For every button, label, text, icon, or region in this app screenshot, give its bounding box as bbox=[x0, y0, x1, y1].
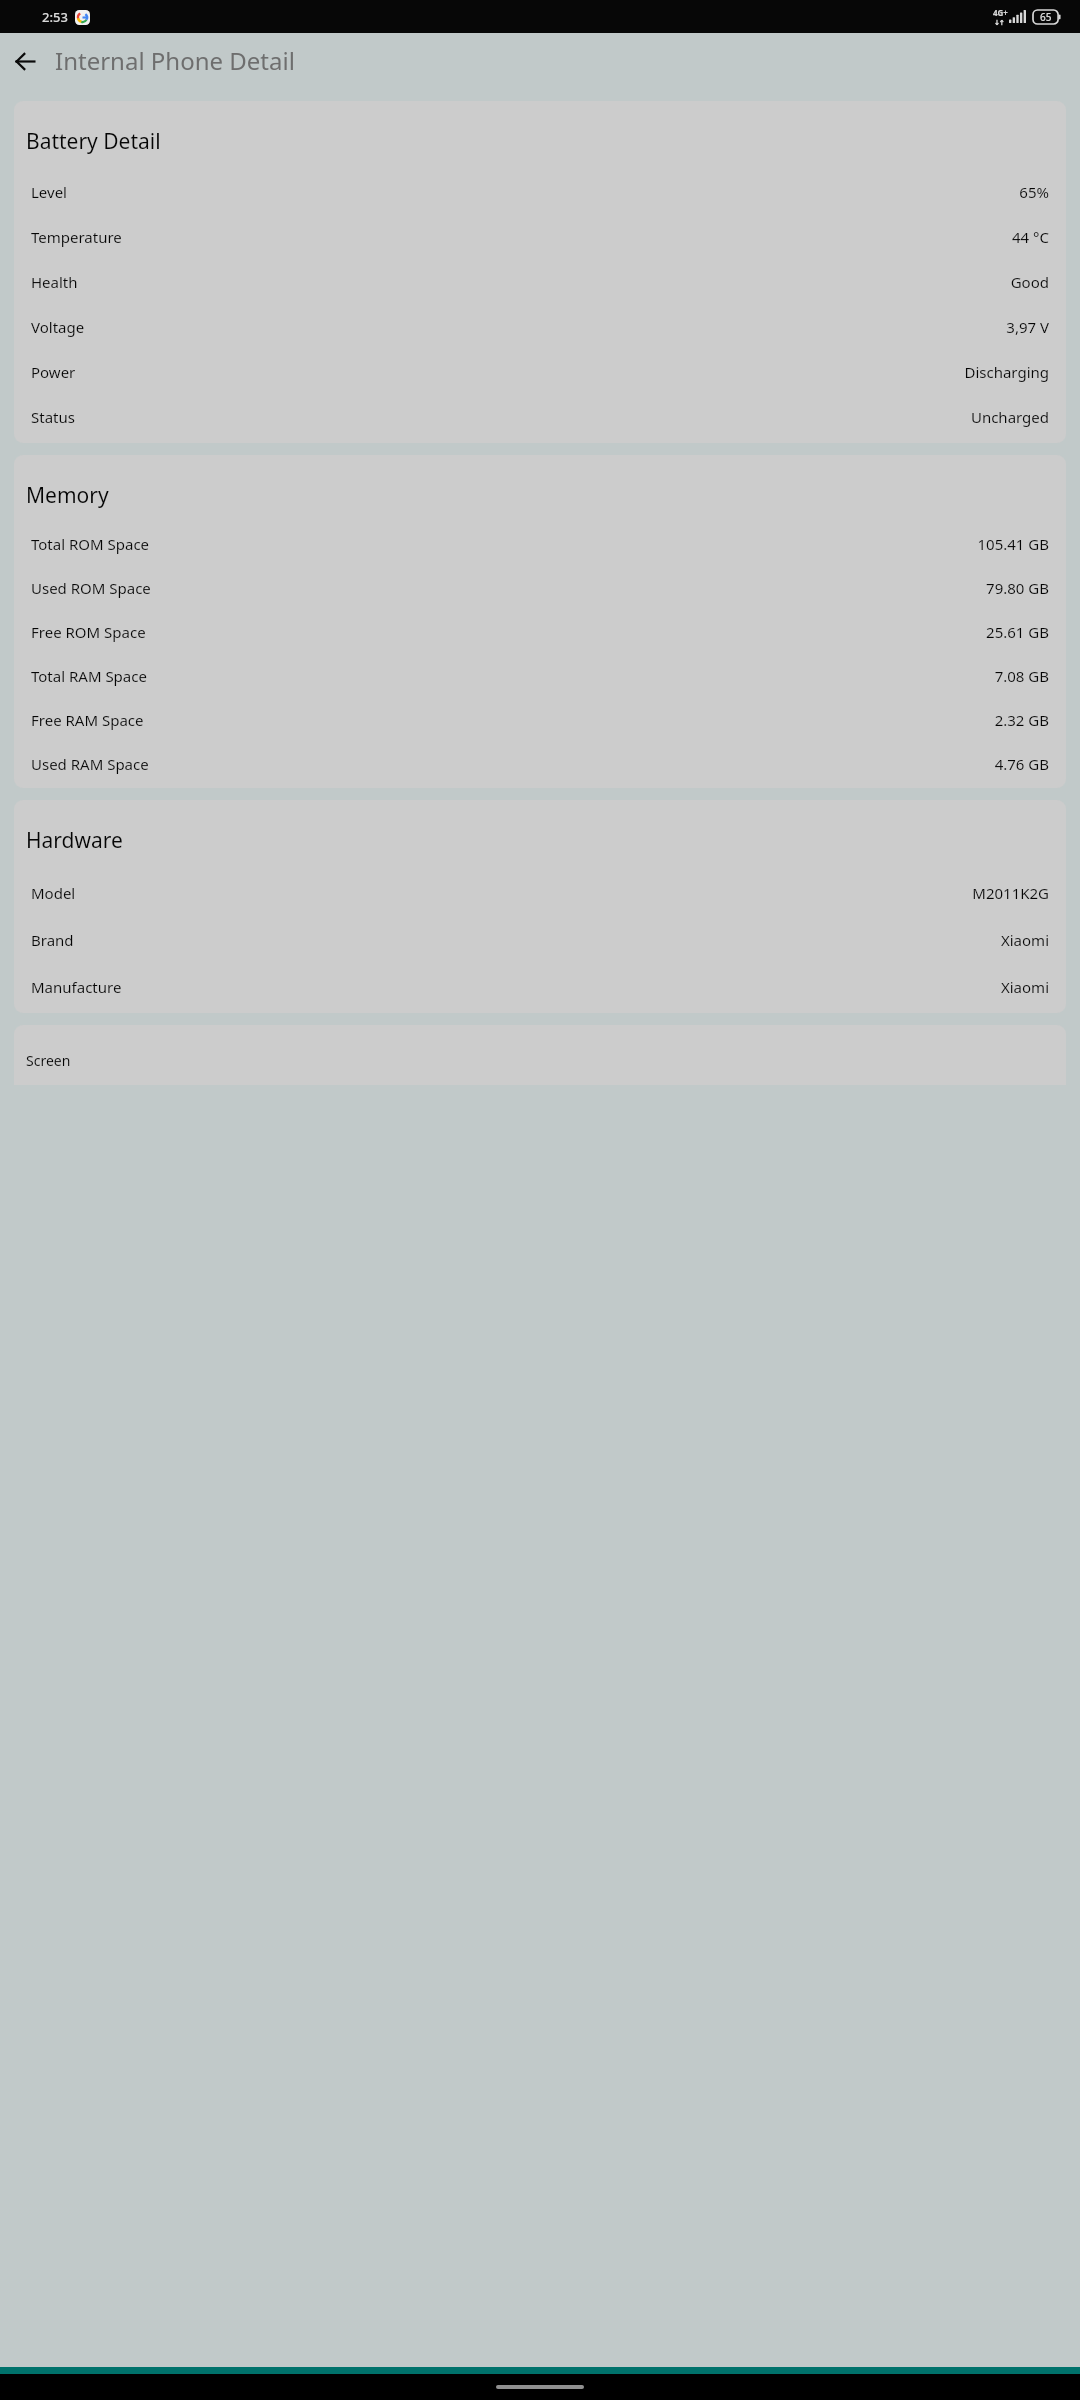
button[interactable]: Brand bbox=[14, 930, 1066, 950]
button[interactable]: Hardware bbox=[14, 800, 1066, 1013]
button[interactable]: Free RAM Space bbox=[14, 710, 1066, 730]
staticText: Screen bbox=[26, 1051, 71, 1070]
button[interactable]: Power bbox=[14, 362, 1066, 382]
staticText: Voltage bbox=[31, 317, 85, 337]
button[interactable]: Level bbox=[14, 182, 1066, 202]
staticText: 3,97 V bbox=[1006, 317, 1049, 337]
staticText: M2011K2G bbox=[972, 883, 1049, 903]
button[interactable]: Status bbox=[14, 407, 1066, 427]
staticText: 65 bbox=[1040, 10, 1052, 24]
button[interactable]: Used RAM Space bbox=[14, 754, 1066, 774]
staticText: Free ROM Space bbox=[31, 622, 146, 642]
staticText: 105.41 GB bbox=[977, 534, 1049, 554]
staticText: Manufacture bbox=[31, 977, 122, 997]
staticText: 2.32 GB bbox=[994, 710, 1049, 730]
staticText: 7.08 GB bbox=[994, 666, 1049, 686]
staticText: Used RAM Space bbox=[31, 754, 149, 774]
staticText: Xiaomi bbox=[1000, 977, 1049, 997]
button[interactable]: Manufacture bbox=[14, 977, 1066, 997]
staticText: Level bbox=[31, 182, 67, 202]
staticText: 4G+ bbox=[993, 7, 1008, 18]
staticText: Health bbox=[31, 272, 78, 292]
staticText: 2:53 bbox=[42, 8, 68, 26]
staticText: Total ROM Space bbox=[31, 534, 150, 554]
staticText: Used ROM Space bbox=[31, 578, 151, 598]
staticText: Good bbox=[1010, 272, 1049, 292]
button[interactable]: Total RAM Space bbox=[14, 666, 1066, 686]
staticText: Power bbox=[31, 362, 76, 382]
staticText: Battery Detail bbox=[26, 127, 161, 156]
staticText: Model bbox=[31, 883, 76, 903]
staticText: Xiaomi bbox=[1000, 930, 1049, 950]
staticText: Memory bbox=[26, 481, 109, 510]
staticText: Total RAM Space bbox=[31, 666, 147, 686]
staticText: 4.76 GB bbox=[994, 754, 1049, 774]
button[interactable]: Free ROM Space bbox=[14, 622, 1066, 642]
button[interactable]: Used ROM Space bbox=[14, 578, 1066, 598]
staticText: Hardware bbox=[26, 826, 123, 855]
staticText: Uncharged bbox=[970, 407, 1049, 427]
button[interactable]: Temperature bbox=[14, 227, 1066, 247]
staticText: Status bbox=[31, 407, 75, 427]
staticText: 25.61 GB bbox=[986, 622, 1049, 642]
button[interactable]: Screen bbox=[14, 1025, 1066, 1085]
button[interactable]: Memory bbox=[14, 455, 1066, 788]
staticText: 65% bbox=[1019, 182, 1049, 202]
button[interactable]: Battery Detail bbox=[14, 101, 1066, 443]
button[interactable]: Health bbox=[14, 272, 1066, 292]
staticText: 44 °C bbox=[1012, 227, 1049, 247]
button[interactable]: Total ROM Space bbox=[14, 534, 1066, 554]
staticText: Discharging bbox=[964, 362, 1049, 382]
staticText: 79.80 GB bbox=[986, 578, 1049, 598]
staticText: Brand bbox=[31, 930, 74, 950]
button[interactable]: Model bbox=[14, 883, 1066, 903]
button[interactable]: Back bbox=[10, 46, 40, 76]
staticText: Free RAM Space bbox=[31, 710, 144, 730]
staticText: Internal Phone Detail bbox=[55, 44, 295, 77]
button[interactable]: Voltage bbox=[14, 317, 1066, 337]
staticText: Temperature bbox=[31, 227, 122, 247]
